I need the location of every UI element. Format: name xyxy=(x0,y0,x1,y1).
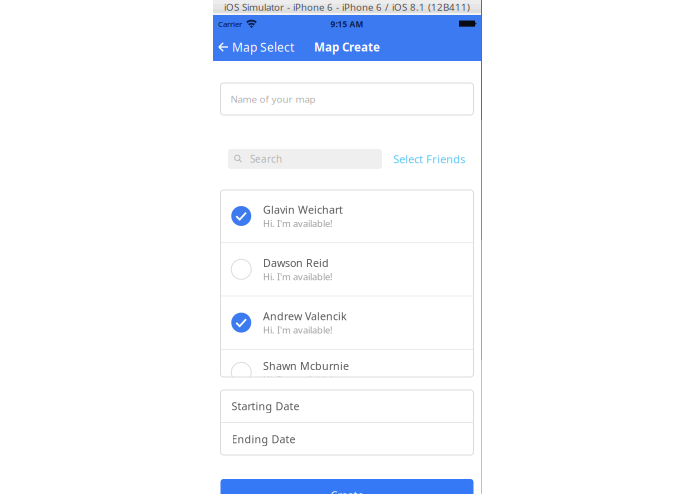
button[interactable]: Map Select xyxy=(213,33,298,61)
staticText: Dawson Reid xyxy=(263,256,329,270)
staticText: 9:15 AM xyxy=(330,18,363,29)
button[interactable]: Glavin Weichart xyxy=(220,190,473,242)
staticText: Hi. I'm available! xyxy=(263,270,333,283)
staticText: Carrier xyxy=(218,19,242,29)
staticText: Andrew Valencik xyxy=(263,309,347,323)
staticText: Select Friends xyxy=(393,152,465,166)
staticText: Shawn Mcburnie xyxy=(263,359,349,373)
staticText: Glavin Weichart xyxy=(263,202,343,217)
staticText: Map Create xyxy=(314,39,380,55)
button[interactable]: Shawn Mcburnie xyxy=(220,350,473,378)
staticText: Hi. I'm available! xyxy=(263,374,333,386)
staticText: Name of your map xyxy=(230,92,315,105)
staticText: Hi. I'm available! xyxy=(263,217,333,230)
button[interactable]: Create xyxy=(220,479,473,494)
button[interactable]: Ending Date xyxy=(220,423,473,455)
staticText: Starting Date xyxy=(231,399,299,413)
staticText: Map Select xyxy=(232,39,294,55)
button[interactable]: Andrew Valencik xyxy=(220,297,473,349)
button[interactable]: Dawson Reid xyxy=(220,243,473,296)
button[interactable]: Select Friends xyxy=(393,149,465,169)
staticText: Hi. I'm available! xyxy=(263,324,333,336)
staticText: Create xyxy=(330,488,363,494)
button[interactable]: Starting Date xyxy=(220,390,473,422)
staticText: Ending Date xyxy=(231,432,295,446)
staticText: iOS Simulator - iPhone 6 - iPhone 6 / iO… xyxy=(224,1,470,13)
staticText: Search xyxy=(250,152,282,165)
